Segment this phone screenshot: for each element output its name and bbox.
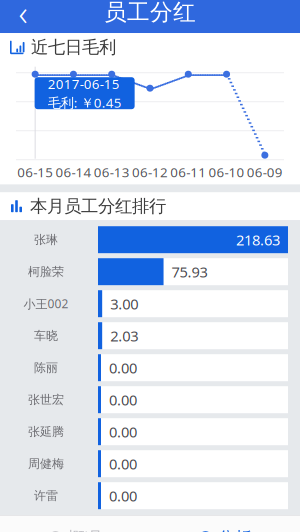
- staticText: 本月员工分红排行: [30, 196, 166, 217]
- staticText: 许雷: [34, 488, 58, 503]
- staticText: 06-13: [94, 163, 130, 181]
- staticText: 0.00: [109, 454, 137, 473]
- button[interactable]: 分析: [150, 516, 300, 532]
- staticText: 06-14: [55, 163, 91, 181]
- staticText: 06-12: [132, 163, 168, 181]
- staticText: 陈丽: [34, 360, 58, 375]
- staticText: 毛利: ￥0.45: [48, 94, 122, 111]
- staticText: 张延腾: [28, 424, 64, 439]
- staticText: 概况: [67, 528, 101, 532]
- staticText: 2.03: [110, 326, 138, 345]
- staticText: 0.00: [109, 422, 137, 441]
- staticText: 75.93: [172, 262, 208, 281]
- staticText: 小王002: [23, 296, 68, 312]
- staticText: ‹: [18, 0, 27, 35]
- staticText: 周健梅: [28, 456, 64, 471]
- button[interactable]: Back: [0, 0, 42, 33]
- staticText: 0.00: [109, 390, 137, 409]
- staticText: 员工分红: [104, 0, 196, 26]
- staticText: 06-11: [170, 163, 206, 181]
- staticText: 2017-06-15: [48, 75, 120, 93]
- staticText: 0.00: [109, 358, 137, 377]
- staticText: 分析: [217, 528, 251, 532]
- staticText: 06-10: [209, 163, 245, 181]
- button[interactable]: 概况: [0, 516, 150, 532]
- staticText: 3.00: [110, 294, 138, 313]
- staticText: 近七日毛利: [31, 37, 116, 58]
- staticText: 0.00: [109, 486, 137, 505]
- staticText: 06-09: [247, 163, 283, 181]
- staticText: 张琳: [34, 232, 58, 247]
- staticText: 06-15: [17, 163, 53, 181]
- staticText: 柯脸荣: [28, 264, 64, 279]
- staticText: 张世宏: [28, 392, 64, 407]
- staticText: 车晓: [34, 328, 58, 343]
- staticText: 218.63: [236, 230, 280, 249]
